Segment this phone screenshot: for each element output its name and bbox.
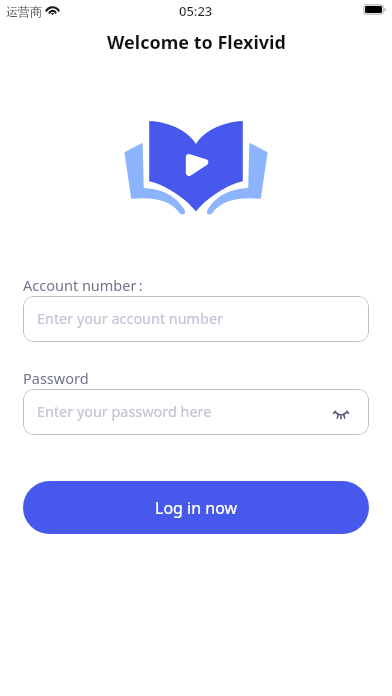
staticText: Enter your account number xyxy=(37,309,223,329)
button[interactable]: Enter your password here xyxy=(23,389,369,435)
staticText: Account number : xyxy=(23,275,143,295)
staticText: Password xyxy=(23,368,89,388)
staticText: Welcome to Flexivid xyxy=(107,30,286,55)
staticText: 05:23 xyxy=(179,2,213,20)
staticText: Enter your password here xyxy=(37,402,212,422)
staticText: 运营商 xyxy=(6,4,42,19)
button[interactable]: Enter your account number xyxy=(23,296,369,342)
staticText: Log in now xyxy=(155,497,238,519)
button[interactable]: Log in now xyxy=(23,481,369,534)
button[interactable]: Show password xyxy=(327,400,355,428)
